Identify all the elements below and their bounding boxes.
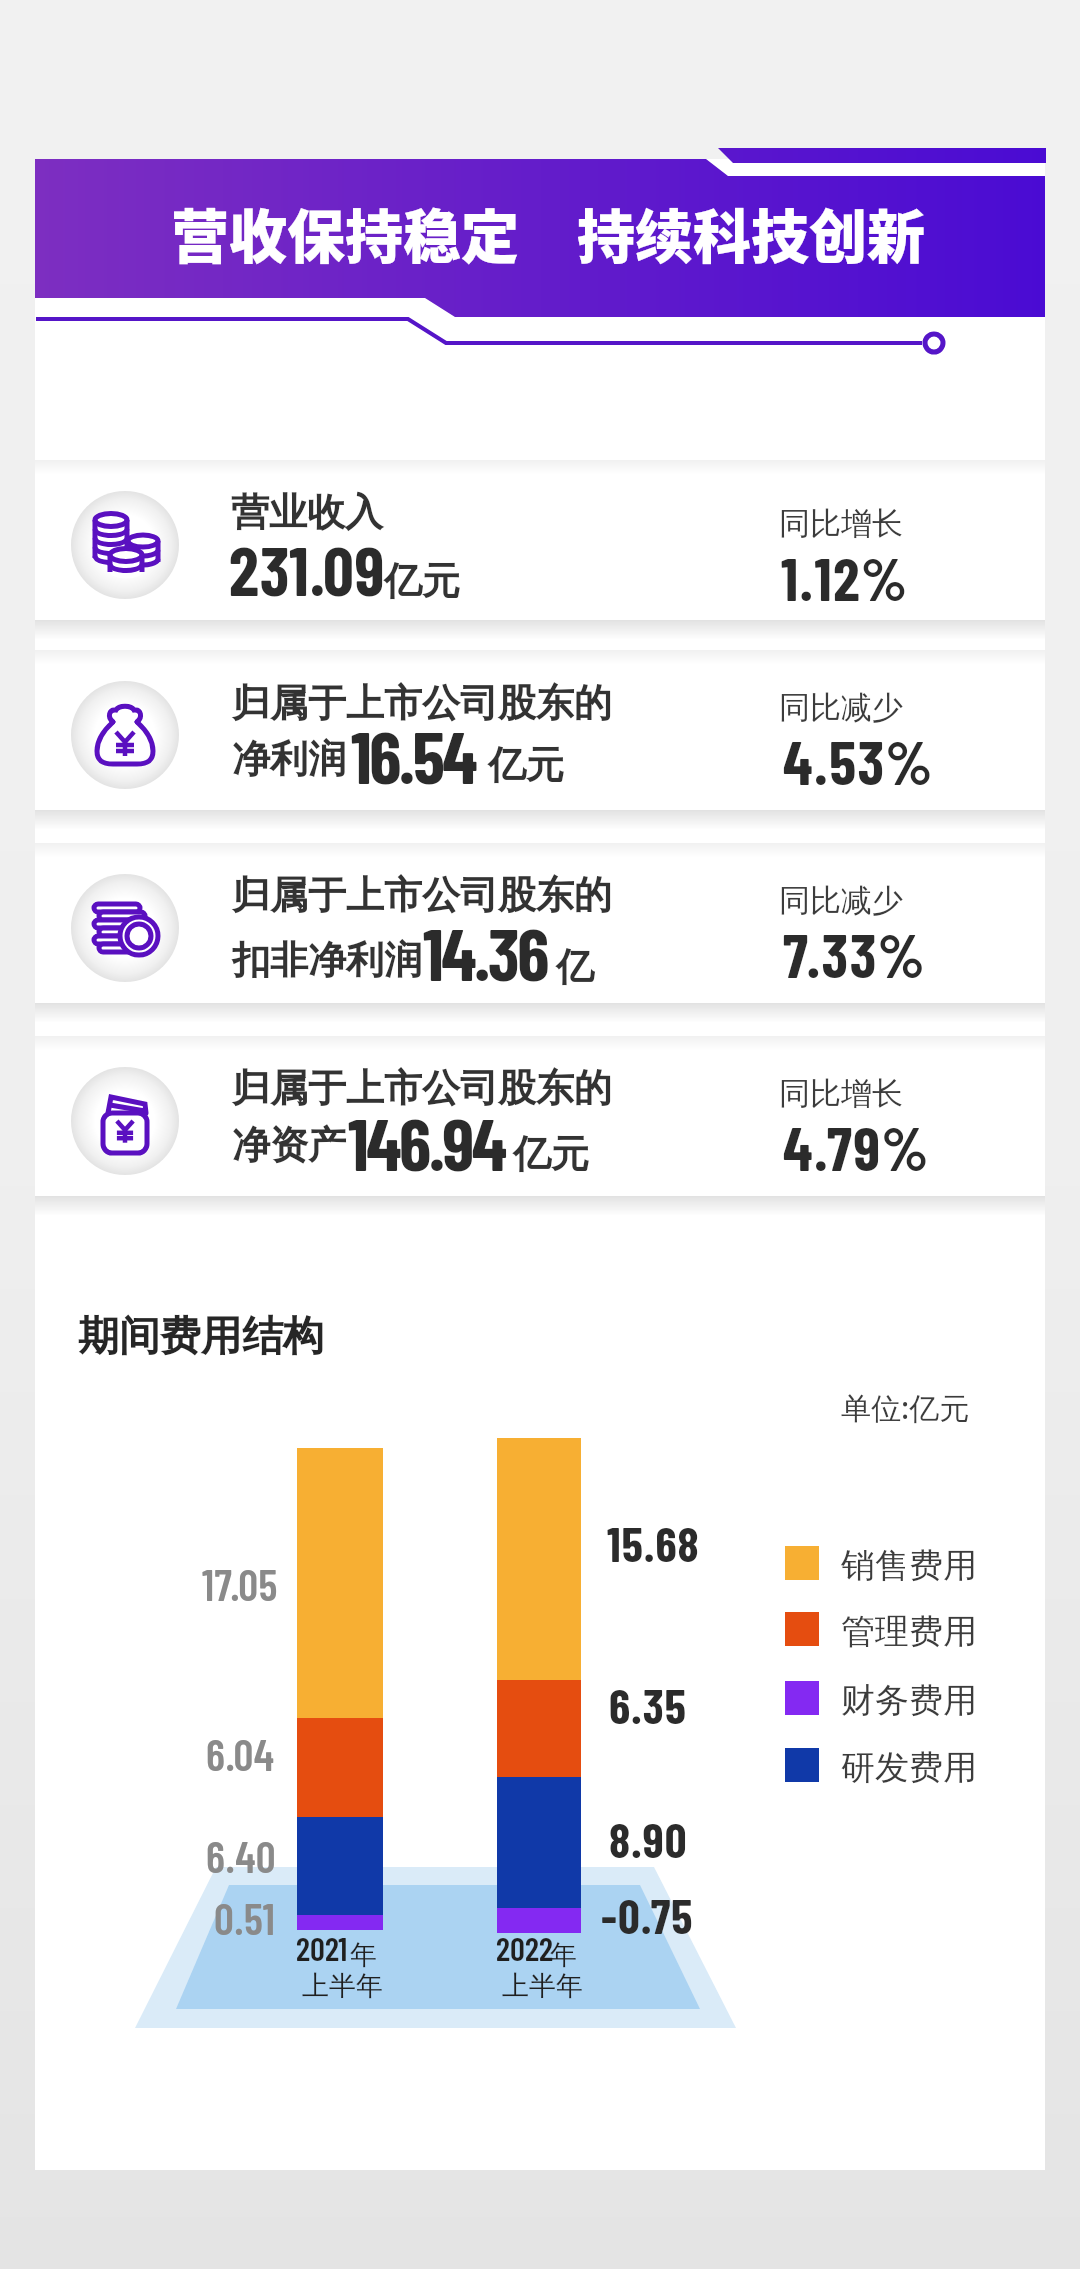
staticText: 亿元 <box>384 557 460 605</box>
staticText: 4.79% <box>783 1110 930 1183</box>
staticText: 16.54 <box>351 711 476 799</box>
button[interactable] <box>35 1036 1045 1196</box>
staticText: 1.12% <box>781 541 909 613</box>
staticText: 2022 <box>496 1928 553 1968</box>
button[interactable] <box>35 843 1045 1003</box>
staticText: 归属于上市公司股东的 <box>232 871 612 919</box>
staticText: 亿元 <box>513 1130 589 1178</box>
staticText: 销售费用 <box>841 1544 977 1587</box>
staticText: -0.75 <box>601 1886 694 1944</box>
staticText: 231.09 <box>229 528 386 610</box>
staticText: 146.94 <box>348 1098 505 1186</box>
staticText: 17.05 <box>202 1557 278 1610</box>
staticText: 同比减少 <box>779 688 903 727</box>
staticText: 归属于上市公司股东的 <box>232 679 612 727</box>
staticText: 15.68 <box>607 1514 700 1572</box>
staticText: 8.90 <box>609 1810 688 1868</box>
staticText: 6.35 <box>609 1676 687 1734</box>
staticText: 上半年 <box>302 1969 383 2003</box>
staticText: 14.36 <box>423 908 547 996</box>
staticText: 营收保持稳定 持续科技创新 <box>171 191 926 275</box>
button[interactable] <box>35 650 1045 810</box>
button[interactable] <box>35 460 1045 620</box>
staticText: 2021 <box>296 1928 348 1968</box>
staticText: 扣非净利润 <box>232 936 422 984</box>
staticText: 年 <box>550 1938 577 1972</box>
staticText: 单位:亿元 <box>841 1387 970 1428</box>
staticText: 同比减少 <box>779 881 903 920</box>
staticText: 0.51 <box>214 1891 276 1944</box>
staticText: 研发费用 <box>841 1746 977 1789</box>
staticText: 净利润 <box>232 735 346 783</box>
staticText: 亿元 <box>488 741 564 789</box>
staticText: 上半年 <box>502 1969 583 2003</box>
staticText: 年 <box>350 1938 377 1972</box>
staticText: 亿 <box>556 943 594 991</box>
staticText: 6.04 <box>206 1727 275 1780</box>
staticText: 期间费用结构 <box>78 1311 324 1363</box>
staticText: 同比增长 <box>779 504 903 543</box>
staticText: 营业收入 <box>231 488 383 536</box>
staticText: 净资产 <box>232 1121 346 1169</box>
staticText: 同比增长 <box>779 1074 903 1113</box>
staticText: 6.40 <box>206 1829 277 1882</box>
staticText: 7.33% <box>783 917 927 990</box>
staticText: 4.53% <box>783 724 934 797</box>
staticText: 财务费用 <box>841 1679 977 1722</box>
staticText: 管理费用 <box>841 1610 977 1653</box>
staticText: 归属于上市公司股东的 <box>232 1064 612 1112</box>
